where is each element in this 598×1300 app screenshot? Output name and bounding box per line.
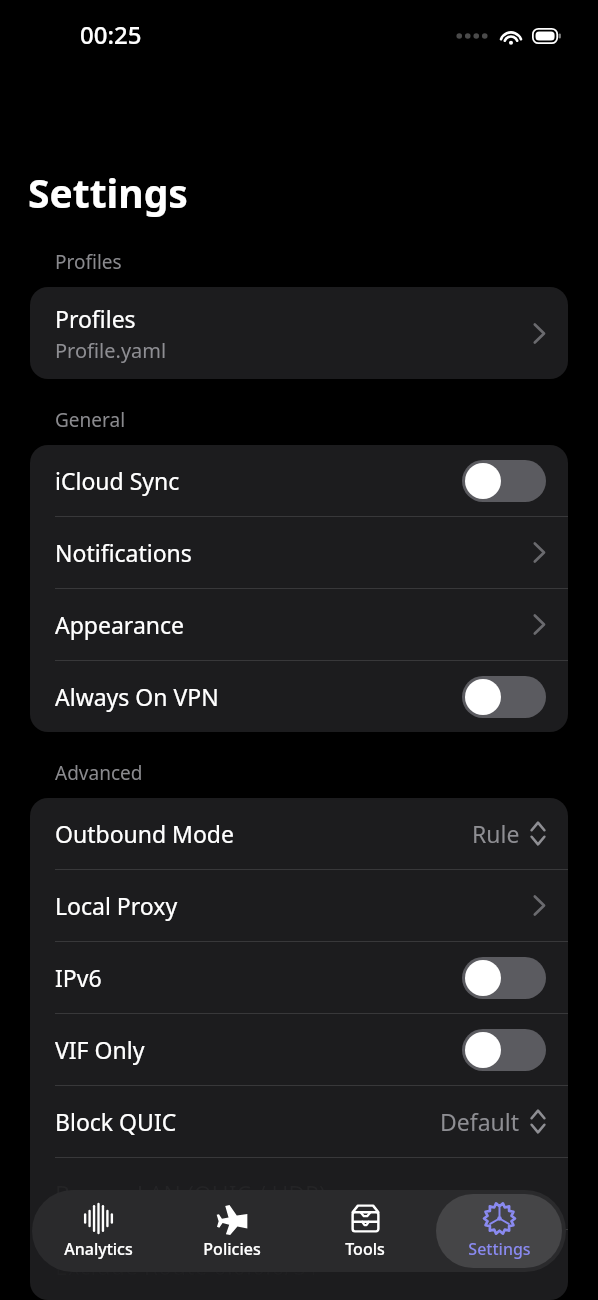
button[interactable]: Bypass LAN (QUIC / UDP) bbox=[30, 1158, 568, 1229]
button[interactable]: Tools bbox=[302, 1194, 428, 1268]
button[interactable]: Outbound Mode bbox=[30, 798, 568, 869]
button[interactable]: Policies bbox=[169, 1194, 294, 1268]
staticText: 00:25 bbox=[80, 18, 142, 51]
staticText: VIF Only bbox=[55, 1034, 145, 1065]
staticText: Advanced bbox=[55, 760, 143, 786]
button[interactable]: Notifications bbox=[30, 517, 568, 588]
button[interactable]: VIF Only toggle bbox=[462, 1029, 546, 1071]
staticText: General bbox=[55, 407, 126, 433]
button[interactable]: Local Proxy bbox=[30, 870, 568, 941]
staticText: Analytics bbox=[64, 1238, 133, 1260]
button[interactable]: IPv6 bbox=[30, 942, 568, 1013]
staticText: Tools bbox=[345, 1238, 385, 1260]
button[interactable]: Profiles bbox=[30, 287, 568, 379]
staticText: Rule bbox=[472, 818, 520, 849]
button[interactable]: Always On VPN toggle bbox=[462, 676, 546, 718]
button[interactable]: Appearance bbox=[30, 589, 568, 660]
button[interactable]: iCloud Sync toggle bbox=[462, 460, 546, 502]
staticText: Appearance bbox=[55, 609, 185, 640]
staticText: Profiles bbox=[55, 303, 136, 334]
button[interactable]: Exclude Route 0.0.0.0/31 bbox=[30, 1230, 568, 1300]
staticText: Settings bbox=[468, 1238, 531, 1260]
button[interactable]: Always On VPN bbox=[30, 661, 568, 732]
button[interactable]: Block QUIC bbox=[30, 1086, 568, 1157]
staticText: Bypass LAN (QUIC / UDP) bbox=[55, 1178, 326, 1209]
button[interactable]: VIF Only bbox=[30, 1014, 568, 1085]
staticText: Settings bbox=[28, 166, 188, 219]
button[interactable]: iCloud Sync bbox=[30, 445, 568, 516]
staticText: iCloud Sync bbox=[55, 465, 180, 496]
staticText: Profile.yaml bbox=[55, 337, 167, 364]
staticText: Outbound Mode bbox=[55, 818, 234, 849]
staticText: Policies bbox=[203, 1238, 261, 1260]
button[interactable]: IPv6 toggle bbox=[462, 957, 546, 999]
button[interactable]: Analytics bbox=[36, 1194, 161, 1268]
staticText: Always On VPN bbox=[55, 681, 219, 712]
staticText: Block QUIC bbox=[55, 1106, 177, 1137]
staticText: Local Proxy bbox=[55, 890, 178, 921]
staticText: Notifications bbox=[55, 537, 192, 568]
staticText: Profiles bbox=[55, 249, 122, 275]
button[interactable]: Settings bbox=[436, 1194, 562, 1268]
staticText: Default bbox=[440, 1106, 520, 1137]
staticText: IPv6 bbox=[55, 962, 102, 993]
staticText: Exclude Route 0.0.0.0/31 bbox=[55, 1250, 320, 1281]
